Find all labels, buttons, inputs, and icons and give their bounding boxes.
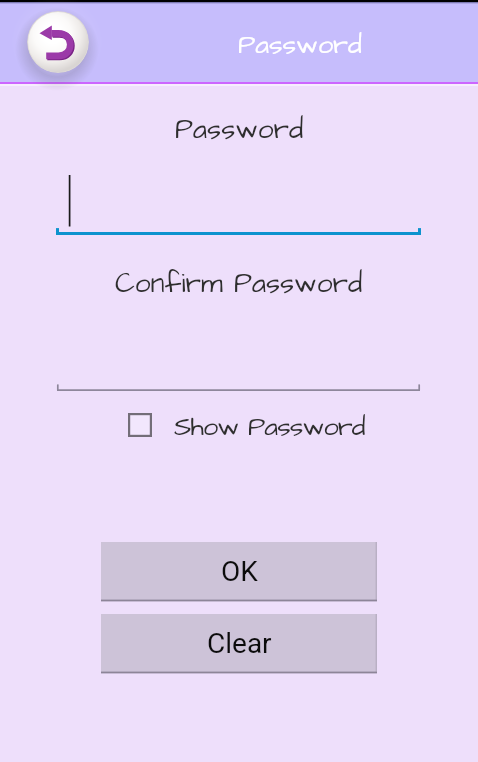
button[interactable]: OK <box>101 542 377 602</box>
staticText: Password <box>238 26 362 64</box>
staticText: Show Password <box>174 408 365 442</box>
staticText: Confirm Password <box>115 264 363 303</box>
button[interactable]: Clear <box>101 614 377 674</box>
button[interactable]: Back <box>27 11 89 73</box>
staticText: Password <box>175 110 304 149</box>
staticText: OK <box>221 555 258 588</box>
staticText: Clear <box>207 627 272 660</box>
button[interactable]: Show Password <box>128 408 378 442</box>
